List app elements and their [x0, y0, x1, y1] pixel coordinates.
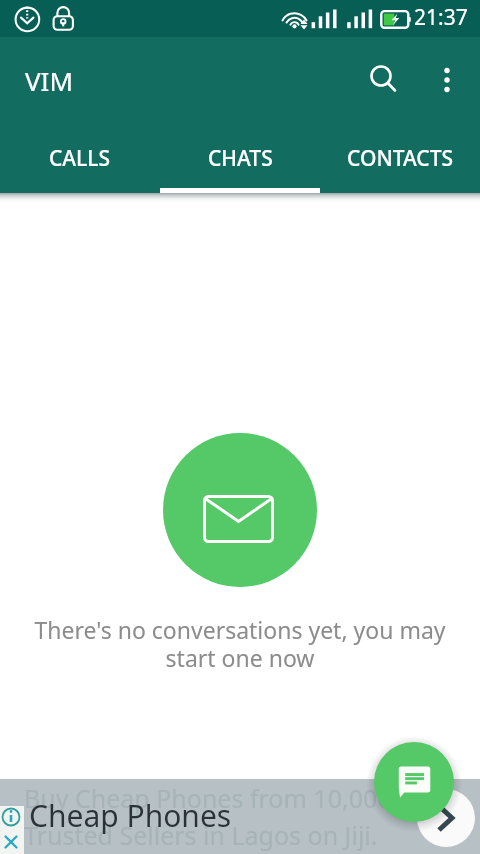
staticText: CONTACTS — [347, 144, 454, 173]
button[interactable]: CALLS — [0, 123, 160, 193]
button[interactable]: New chat — [374, 742, 454, 822]
staticText: Cheap Phones — [29, 795, 232, 836]
button[interactable]: More options — [419, 52, 475, 108]
staticText: CHATS — [208, 144, 273, 173]
staticText: VIM — [25, 63, 73, 98]
button[interactable]: Open ad — [417, 789, 475, 847]
button[interactable]: Buy Cheap Phones from 10,000 — [0, 779, 480, 854]
staticText: Trusted Sellers in Lagos on Jiji. — [24, 818, 378, 852]
button[interactable]: Search — [356, 52, 412, 108]
staticText: There's no conversations yet, you may st… — [30, 614, 450, 674]
button[interactable]: CHATS — [160, 123, 320, 193]
staticText: 21:37 — [414, 3, 468, 32]
staticText: Buy Cheap Phones from 10,000 — [24, 781, 392, 815]
button[interactable]: CONTACTS — [320, 123, 480, 193]
staticText: CALLS — [49, 144, 111, 173]
